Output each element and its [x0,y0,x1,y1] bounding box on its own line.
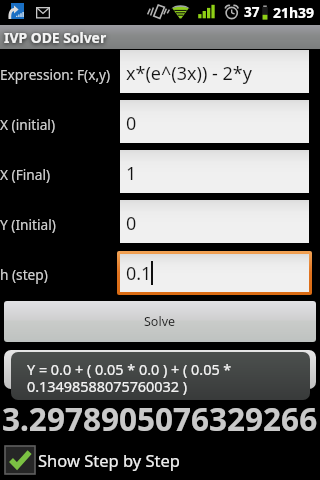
button[interactable]: Show Step by Step [0,440,320,480]
staticText: Y (Initial) [0,215,56,234]
button[interactable] [120,150,309,193]
staticText: 3.2978905076329266 [2,397,318,431]
button[interactable] [120,100,309,143]
staticText: 37 [244,3,260,21]
staticText: Y = 0.0 + ( 0.05 * 0.0 ) + ( 0.05 * 0.13… [27,360,232,396]
staticText: 0.1 [126,261,152,286]
staticText: 0 [126,211,137,236]
staticText: X (Final) [0,165,51,184]
button[interactable] [120,200,309,243]
staticText: x*(e^(3x)) - 2*y [126,61,252,86]
staticText: Show Step by Step [38,449,180,471]
button[interactable] [120,50,309,93]
button[interactable]: Solve [4,301,316,342]
staticText: 21h39 [273,3,315,22]
staticText: IVP ODE Solver [4,28,107,47]
staticText: h (step) [0,265,48,284]
button[interactable] [120,254,309,292]
staticText: Solve [144,313,176,330]
staticText: X (initial) [0,115,55,134]
staticText: Expression: F(x,y) [0,65,111,84]
staticText: 0 [126,111,137,136]
staticText: 1 [126,161,137,186]
